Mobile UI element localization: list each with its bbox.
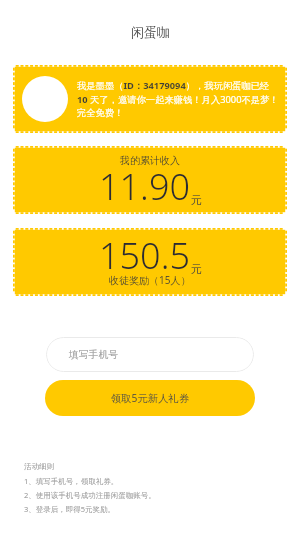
staticText: 收徒奖励（15人） — [109, 273, 191, 287]
staticText: 我的累计收入 — [120, 154, 180, 167]
staticText: 活动细则 1、填写手机号，领取礼券。 2、使用该手机号成功注册闲蛋咖账号。 3、… — [24, 462, 156, 514]
staticText: 闲蛋咖 — [131, 24, 170, 40]
staticText: 元 — [191, 262, 202, 276]
staticText: 我是墨墨（ID：34179094），我玩闲蛋咖已经 10 天了，邀请你一起来赚钱… — [77, 79, 279, 119]
button[interactable]: 填写手机号 — [46, 337, 254, 372]
staticText: 150.5 — [99, 231, 191, 280]
button[interactable]: 领取5元新人礼券 — [45, 380, 255, 416]
staticText: 元 — [191, 193, 202, 207]
staticText: 填写手机号 — [69, 349, 118, 361]
staticText: 11.90 — [99, 162, 191, 211]
staticText: 领取5元新人礼券 — [111, 391, 189, 405]
